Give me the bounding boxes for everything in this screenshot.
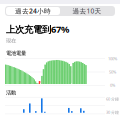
- staticText: 50%: [109, 69, 116, 75]
- staticText: 過去24小時: [15, 7, 51, 15]
- staticText: 活動: [6, 89, 16, 96]
- staticText: 100%: [108, 56, 117, 61]
- staticText: 現在: [6, 37, 16, 44]
- staticText: 上次充電到67%: [6, 23, 69, 35]
- staticText: 30 分鐘: [106, 109, 119, 115]
- staticText: 60 分鐘: [106, 96, 119, 101]
- staticText: 0%: [110, 83, 115, 88]
- staticText: 過去10天: [72, 7, 101, 15]
- button[interactable]: 過去10天: [60, 7, 114, 15]
- button[interactable]: 過去24小時: [6, 7, 60, 15]
- staticText: 電池電量: [6, 50, 26, 56]
